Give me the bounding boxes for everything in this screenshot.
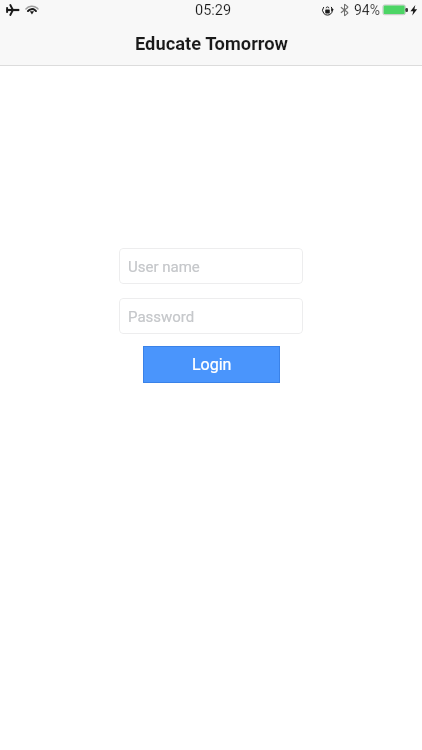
staticText: Educate Tomorrow — [135, 33, 288, 54]
staticText: 94% — [354, 2, 380, 18]
staticText: 05:29 — [195, 2, 232, 19]
staticText: Password — [128, 308, 195, 326]
button[interactable]: Login — [143, 346, 280, 383]
staticText: Login — [192, 355, 232, 374]
staticText: User name — [128, 258, 200, 276]
button[interactable]: User name — [119, 248, 303, 284]
button[interactable]: Password — [119, 298, 303, 334]
